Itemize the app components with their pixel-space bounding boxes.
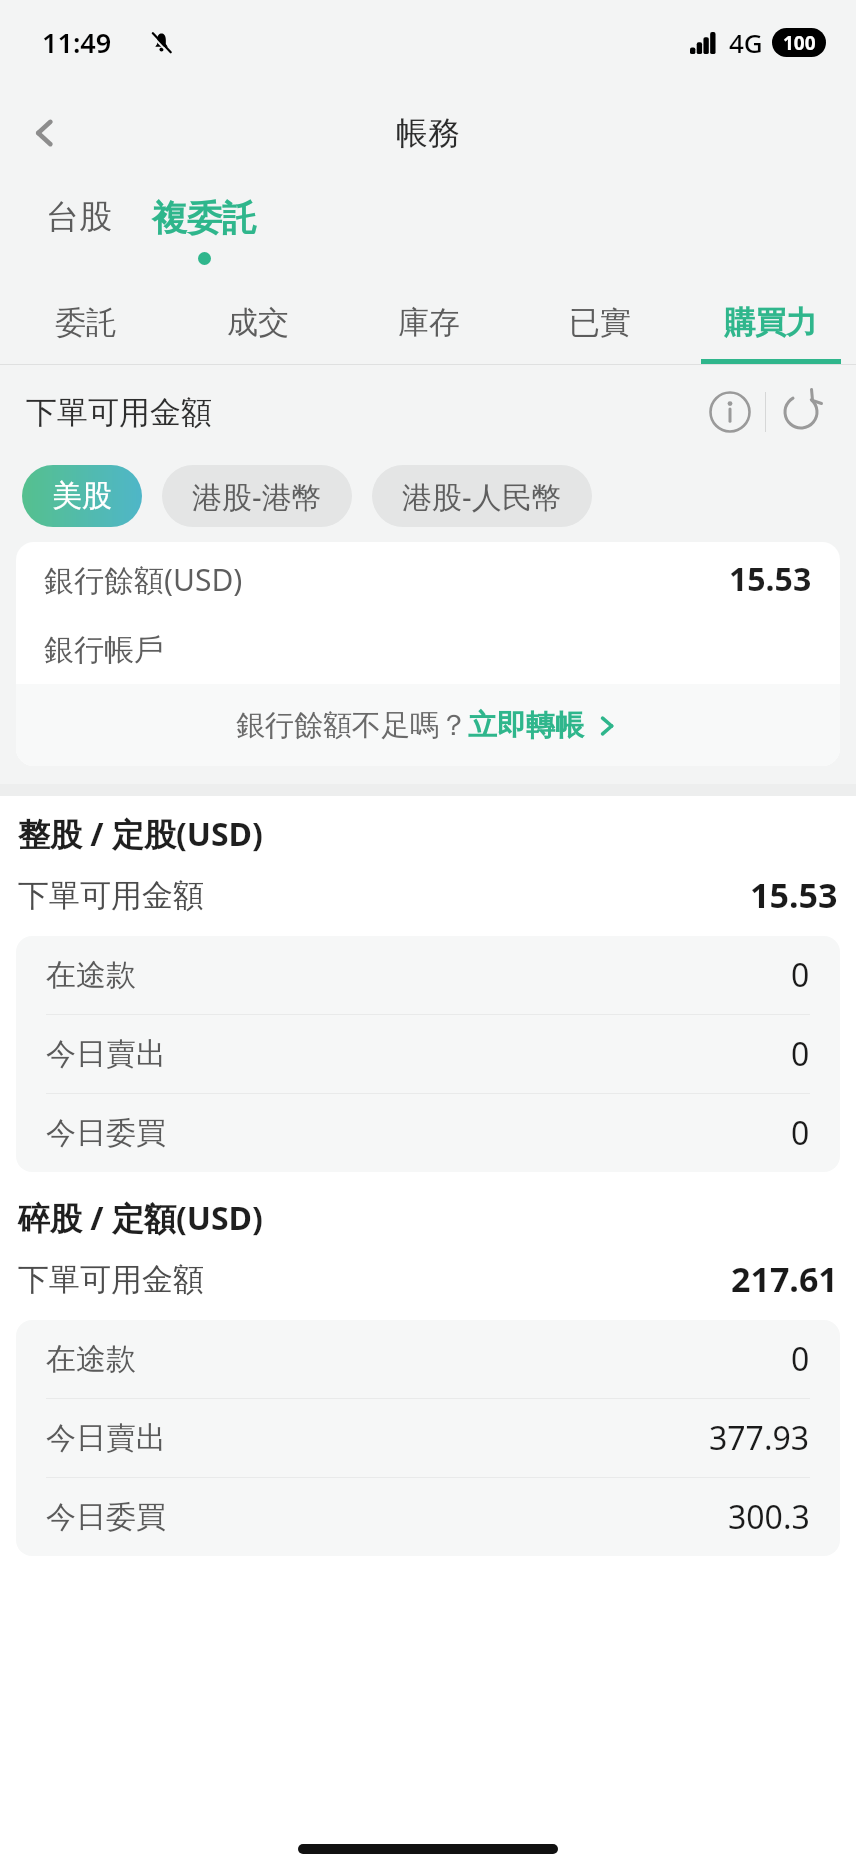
button[interactable]: 庫存 — [343, 280, 514, 364]
staticText: 217.61 — [731, 1256, 838, 1302]
staticText: 今日賣出 — [46, 1419, 166, 1457]
staticText: 銀行餘額(USD) — [44, 559, 243, 600]
staticText: 港股-人民幣 — [402, 476, 562, 517]
staticText: 美股 — [52, 477, 112, 515]
staticText: 銀行帳戶 — [44, 631, 164, 669]
staticText: 已實 — [569, 303, 631, 342]
staticText: 港股-港幣 — [192, 476, 322, 517]
staticText: 銀行餘額不足嗎？ — [236, 707, 468, 744]
staticText: 15.53 — [750, 872, 838, 918]
staticText: 在途款 — [46, 956, 136, 994]
staticText: 庫存 — [398, 303, 460, 342]
staticText: 在途款 — [46, 1340, 136, 1378]
staticText: 下單可用金額 — [26, 393, 212, 432]
staticText: 11:49 — [42, 24, 112, 61]
staticText: 複委託 — [152, 196, 257, 240]
staticText: 今日委買 — [46, 1498, 166, 1536]
staticText: 購買力 — [724, 303, 817, 342]
staticText: 300.3 — [728, 1495, 810, 1539]
button[interactable]: 美股 — [22, 465, 142, 527]
staticText: 0 — [791, 1337, 810, 1381]
button[interactable]: Back — [14, 102, 76, 164]
button[interactable]: 銀行餘額不足嗎？ — [16, 684, 840, 766]
button[interactable]: 複委託 — [148, 190, 261, 265]
button[interactable]: 港股-人民幣 — [372, 465, 592, 527]
button[interactable]: 委託 — [0, 280, 172, 364]
button[interactable]: 成交 — [172, 280, 343, 364]
staticText: 帳務 — [396, 113, 460, 153]
staticText: 立即轉帳 — [468, 707, 584, 744]
staticText: 15.53 — [729, 557, 812, 601]
staticText: 碎股 / 定額(USD) — [18, 1196, 263, 1240]
staticText: 今日委買 — [46, 1114, 166, 1152]
button[interactable]: 已實 — [514, 280, 685, 364]
staticText: 下單可用金額 — [18, 1260, 204, 1299]
button[interactable]: Info — [701, 383, 759, 441]
staticText: 0 — [791, 953, 810, 997]
staticText: 377.93 — [709, 1416, 810, 1460]
staticText: 委託 — [55, 303, 117, 342]
staticText: 台股 — [46, 196, 112, 238]
staticText: 0 — [791, 1032, 810, 1076]
staticText: 0 — [791, 1111, 810, 1155]
button[interactable]: Refresh — [772, 383, 830, 441]
button[interactable]: 港股-港幣 — [162, 465, 352, 527]
button[interactable]: 台股 — [42, 190, 116, 244]
staticText: 整股 / 定股(USD) — [18, 812, 263, 856]
staticText: 成交 — [227, 303, 289, 342]
staticText: 4G — [729, 25, 763, 60]
button[interactable]: 購買力 — [685, 280, 856, 364]
staticText: 今日賣出 — [46, 1035, 166, 1073]
staticText: 100 — [783, 30, 816, 56]
staticText: 下單可用金額 — [18, 876, 204, 915]
